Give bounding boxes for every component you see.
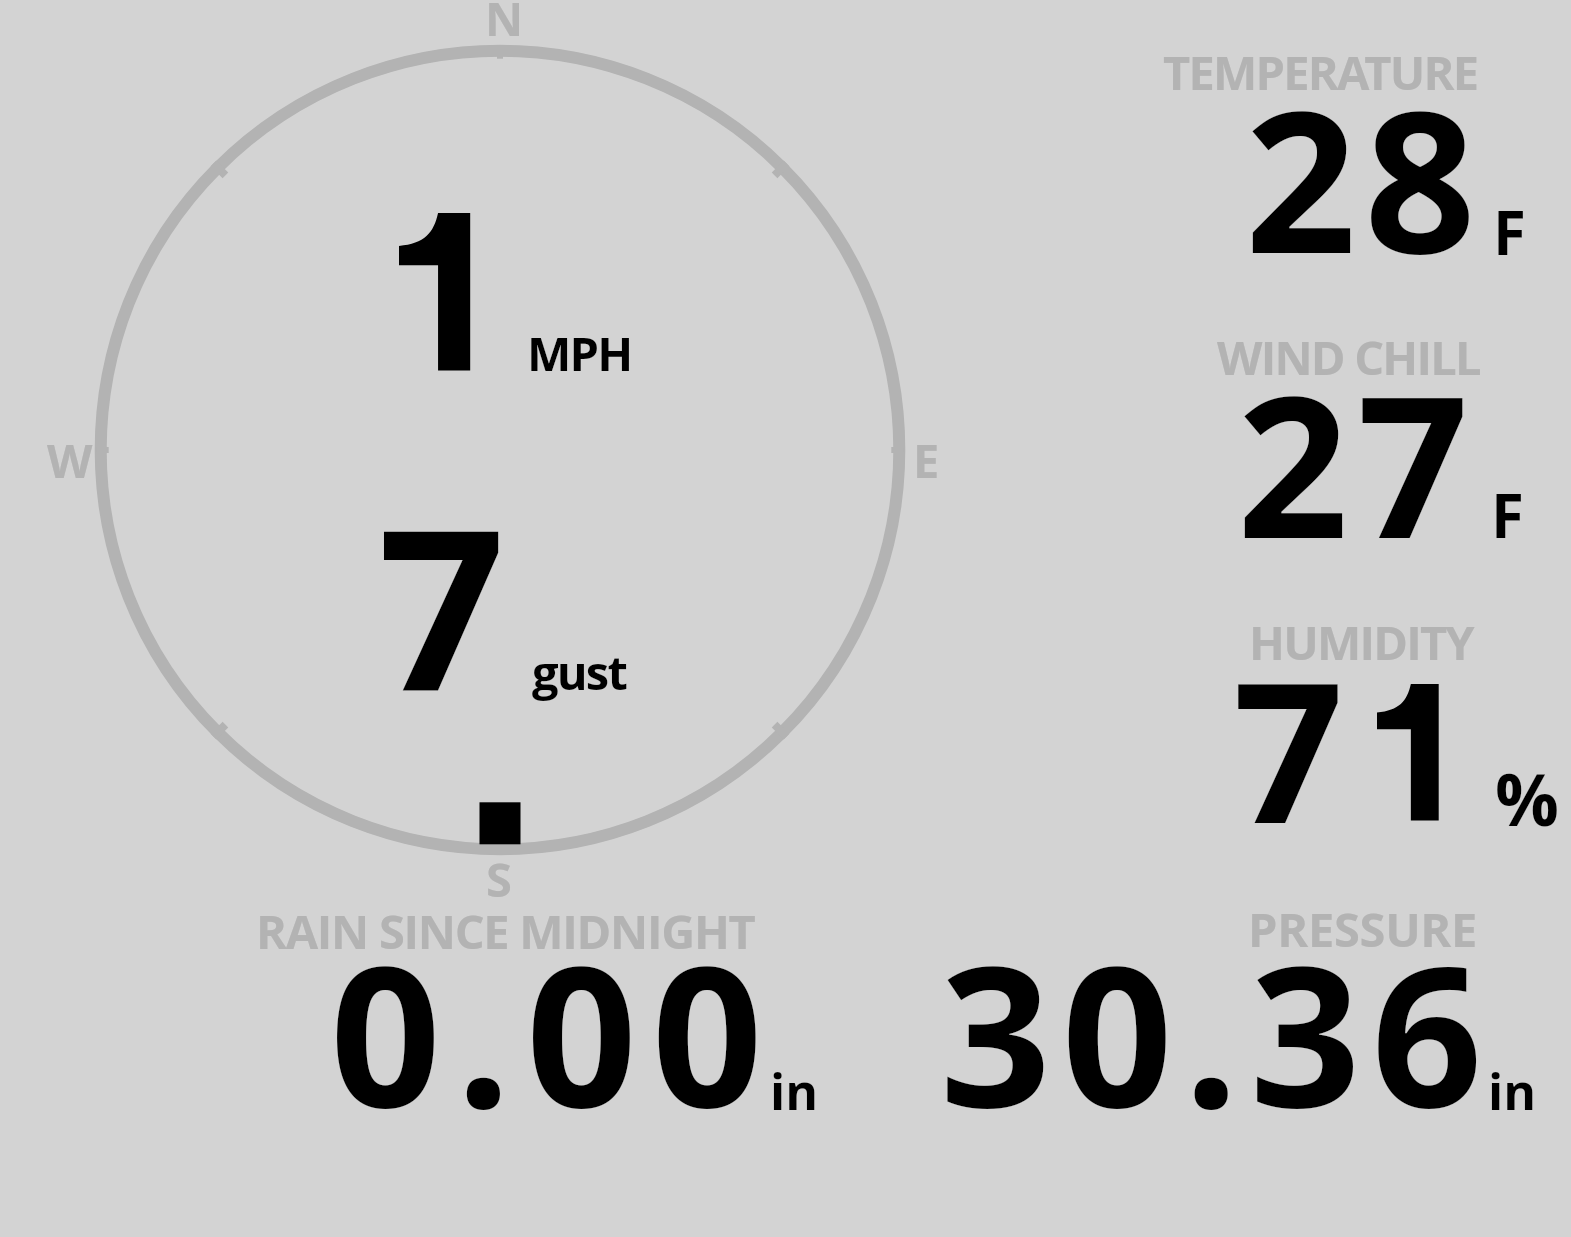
staticText: %: [1495, 750, 1559, 847]
staticText: F: [1493, 191, 1526, 273]
button[interactable]: Wind direction compass, south: [101, 51, 899, 849]
staticText: TEMPERATURE: [1163, 40, 1478, 104]
button[interactable]: Pressure 30.36 inches: [930, 905, 1540, 1120]
button[interactable]: Humidity 71 percent: [1150, 610, 1560, 835]
staticText: in: [1488, 1057, 1537, 1125]
staticText: WIND CHILL: [1217, 325, 1480, 389]
staticText: MPH: [527, 321, 632, 385]
staticText: PRESSURE: [1248, 897, 1478, 961]
staticText: N: [485, 0, 524, 50]
staticText: 27: [1237, 330, 1478, 596]
staticText: 28: [1245, 45, 1484, 311]
staticText: HUMIDITY: [1249, 610, 1473, 674]
button[interactable]: Temperature 28 degrees F: [1150, 40, 1560, 265]
staticText: 0.00: [330, 900, 778, 1164]
staticText: S: [486, 847, 512, 911]
staticText: W: [47, 428, 93, 492]
staticText: 30.36: [940, 900, 1494, 1164]
staticText: RAIN SINCE MIDNIGHT: [256, 899, 755, 963]
staticText: gust: [532, 640, 627, 704]
staticText: F: [1491, 474, 1524, 556]
staticText: in: [770, 1057, 819, 1125]
staticText: 7: [378, 453, 506, 757]
button[interactable]: Rain since midnight 0.00 inches: [255, 905, 825, 1120]
button[interactable]: Wind chill 27 degrees F: [1150, 325, 1560, 550]
staticText: E: [913, 428, 940, 492]
staticText: 7: [1233, 616, 1344, 880]
